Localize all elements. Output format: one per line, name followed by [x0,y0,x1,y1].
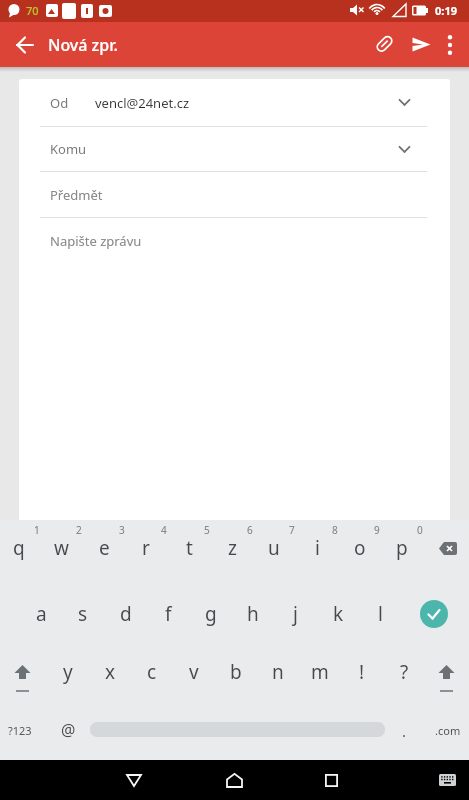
button[interactable] [1,646,43,698]
button[interactable]: j [275,587,315,641]
button[interactable]: Předmět [19,172,450,217]
staticText: 7 [289,523,295,537]
button[interactable]: q [0,521,39,575]
button[interactable]: ! [342,645,382,699]
staticText: o [354,535,366,561]
button[interactable]: z [212,521,252,575]
button[interactable] [436,28,464,62]
button[interactable] [427,522,469,574]
staticText: l [378,601,383,627]
button[interactable]: g [191,587,231,641]
staticText: r [142,535,150,561]
staticText: h [247,601,259,627]
staticText: i [315,535,320,561]
button[interactable]: f [148,587,188,641]
staticText: s [78,601,88,627]
button[interactable]: o [340,521,380,575]
staticText: v [189,659,199,685]
staticText: 2 [76,523,82,537]
button[interactable]: w [41,521,81,575]
button[interactable]: h [233,587,273,641]
button[interactable]: p [382,521,422,575]
button[interactable]: x [90,645,130,699]
button[interactable]: Od [19,79,450,126]
staticText: 70 [26,3,39,18]
staticText: Od [50,94,69,112]
button[interactable]: @ [48,703,88,757]
button[interactable]: n [258,645,298,699]
staticText: d [120,601,132,627]
staticText: j [293,601,298,627]
button[interactable] [8,28,42,62]
staticText: k [333,601,344,627]
button[interactable]: t [169,521,209,575]
staticText: 1 [34,523,40,537]
staticText: Napište zprávu [50,232,142,250]
button[interactable]: ? [384,645,424,699]
staticText: w [54,535,69,561]
staticText: ? [400,659,409,685]
staticText: .com [435,723,461,738]
button[interactable]: m [300,645,340,699]
button[interactable]: e [84,521,124,575]
button[interactable]: l [360,587,400,641]
staticText: y [63,659,73,685]
button[interactable]: i [297,521,337,575]
button[interactable]: c [132,645,172,699]
staticText: t [186,535,193,561]
staticText: f [165,601,172,627]
staticText: z [228,535,237,561]
staticText: n [272,659,284,685]
button[interactable] [432,766,464,794]
button[interactable] [309,760,353,800]
button[interactable] [420,600,448,628]
staticText: 9 [374,523,380,537]
staticText: x [105,659,116,685]
staticText: Komu [50,140,87,158]
staticText: 6 [247,523,253,537]
button[interactable]: b [216,645,256,699]
staticText: 8 [332,523,338,537]
staticText: 3 [119,523,125,537]
button[interactable] [368,28,400,60]
staticText: m [311,659,329,685]
button[interactable]: s [63,587,103,641]
staticText: ! [359,659,365,685]
button[interactable]: k [318,587,358,641]
button[interactable]: .com [428,704,468,756]
button[interactable]: Napište zprávu [19,218,450,263]
button[interactable] [425,646,467,698]
button[interactable]: a [21,587,61,641]
button[interactable]: u [254,521,294,575]
staticText: a [36,601,47,627]
staticText: g [205,601,217,627]
staticText: 0 [417,523,423,537]
staticText: u [268,535,280,561]
staticText: vencl@24net.cz [95,94,190,112]
button[interactable] [212,760,256,800]
staticText: . [402,721,407,741]
button[interactable]: r [126,521,166,575]
staticText: q [13,535,25,561]
staticText: c [147,659,157,685]
button[interactable] [112,760,156,800]
button[interactable]: ?123 [2,704,38,756]
staticText: Předmět [50,186,103,204]
button[interactable]: v [174,645,214,699]
staticText: 0:19 [435,3,457,18]
button[interactable] [404,28,438,62]
button[interactable]: d [106,587,146,641]
button[interactable]: . [384,704,424,758]
staticText: e [99,535,110,561]
staticText: p [396,535,408,561]
staticText: b [230,659,242,685]
staticText: Nová zpr. [48,34,118,56]
button[interactable]: Komu [19,127,450,171]
button[interactable]: y [48,645,88,699]
staticText: 5 [204,523,210,537]
staticText: 4 [161,523,167,537]
staticText: @ [61,719,76,741]
staticText: ?123 [8,723,32,738]
